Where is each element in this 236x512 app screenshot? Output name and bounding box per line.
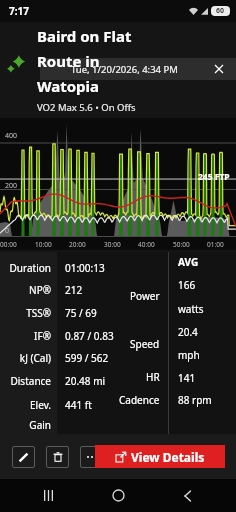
staticText: Gain — [0, 418, 51, 432]
staticText: 40:00 — [138, 240, 155, 249]
staticText: Watopia — [37, 76, 100, 96]
staticText: Duration — [9, 261, 51, 275]
button[interactable]: Dismiss — [208, 58, 230, 80]
staticText: 0.87 / 0.83 — [65, 329, 114, 343]
staticText: 20:00 — [69, 240, 86, 249]
staticText: watts — [178, 302, 204, 316]
button[interactable]: Recent apps — [26, 479, 70, 512]
staticText: kJ (Cal) — [19, 351, 51, 365]
staticText: Speed — [130, 337, 160, 351]
staticText: 88 rpm — [178, 393, 212, 407]
other: AI highlight — [5, 54, 26, 75]
staticText: 60 — [216, 6, 225, 16]
staticText: 01:00 — [207, 240, 224, 249]
button[interactable]: Home — [96, 479, 140, 512]
staticText: 200 — [5, 181, 18, 191]
staticText: 245 FTP — [198, 171, 230, 183]
staticText: NP® — [29, 283, 51, 297]
staticText: 00:00 — [0, 240, 17, 249]
button[interactable]: View Details — [95, 445, 225, 468]
staticText: 10:00 — [35, 240, 52, 249]
staticText: Baird on Flat — [37, 26, 132, 46]
button[interactable]: More options — [80, 446, 103, 468]
staticText: 20.4 — [178, 325, 198, 339]
staticText: 01:00:13 — [65, 261, 105, 275]
staticText: 212 — [65, 283, 83, 297]
button[interactable]: Tue, 1/20/2026, 4:34 PM — [40, 58, 236, 80]
button[interactable]: Back — [166, 479, 210, 512]
staticText: Distance — [10, 374, 51, 388]
button[interactable]: Delete — [46, 446, 69, 468]
staticText: 75 / 69 — [65, 306, 97, 320]
staticText: 441 ft — [65, 398, 92, 412]
staticText: Cadence — [119, 393, 160, 407]
button[interactable]: Edit — [12, 446, 35, 468]
staticText: 30:00 — [104, 240, 121, 249]
staticText: mph — [178, 348, 200, 362]
staticText: 50:00 — [173, 240, 190, 249]
staticText: 400 — [5, 131, 18, 141]
staticText: IF® — [34, 329, 51, 343]
staticText: HR — [146, 370, 160, 384]
staticText: 20.48 mi — [65, 374, 106, 388]
staticText: 141 — [178, 371, 196, 385]
staticText: Elev. — [30, 398, 51, 412]
staticText: 0 — [5, 226, 10, 236]
staticText: Power — [130, 289, 160, 303]
staticText: Route in — [37, 51, 100, 71]
staticText: View Details — [131, 449, 205, 465]
staticText: Tue, 1/20/2026, 4:34 PM — [71, 63, 178, 76]
staticText: 599 / 562 — [65, 351, 109, 365]
staticText: VO2 Max 5.6 • On Offs — [37, 101, 136, 114]
staticText: 166 — [178, 278, 196, 292]
staticText: 7:17 — [9, 4, 29, 18]
staticText: AVG — [178, 255, 199, 269]
staticText: TSS® — [26, 306, 51, 320]
